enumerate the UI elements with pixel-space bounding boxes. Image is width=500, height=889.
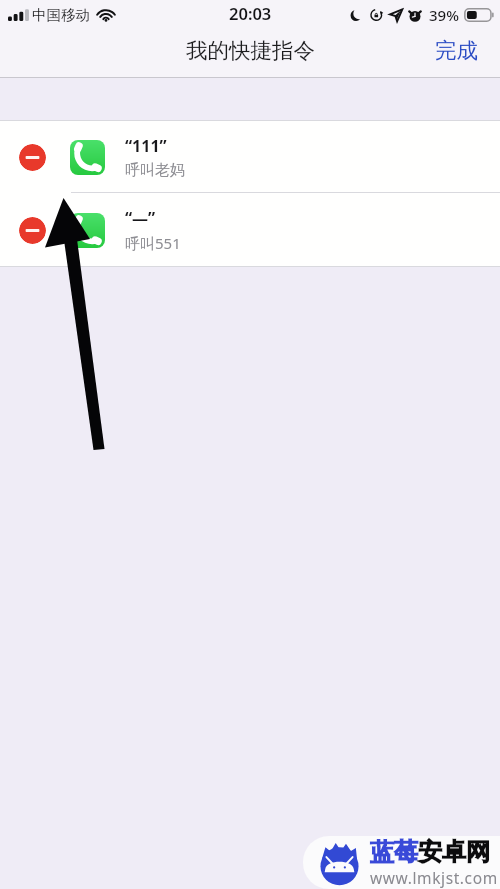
staticText: 安卓网 xyxy=(418,837,490,867)
staticText: 呼叫老妈 xyxy=(125,161,185,180)
button[interactable]: Delete xyxy=(19,144,46,171)
staticText: “—” xyxy=(125,207,156,229)
staticText: 39% xyxy=(429,5,459,25)
staticText: 中国移动 xyxy=(32,6,90,24)
button[interactable]: 完成 xyxy=(421,31,500,70)
button[interactable]: Delete xyxy=(0,121,500,193)
staticText: 我的快捷指令 xyxy=(186,37,315,64)
staticText: www.lmkjst.com xyxy=(370,867,498,888)
staticText: 呼叫551 xyxy=(125,233,181,253)
button[interactable]: Delete xyxy=(19,217,46,244)
staticText: “111” xyxy=(125,135,167,157)
staticText: 20:03 xyxy=(229,2,272,24)
button[interactable]: Delete xyxy=(0,193,500,267)
staticText: 完成 xyxy=(435,37,478,64)
staticText: 蓝莓 xyxy=(370,837,418,867)
